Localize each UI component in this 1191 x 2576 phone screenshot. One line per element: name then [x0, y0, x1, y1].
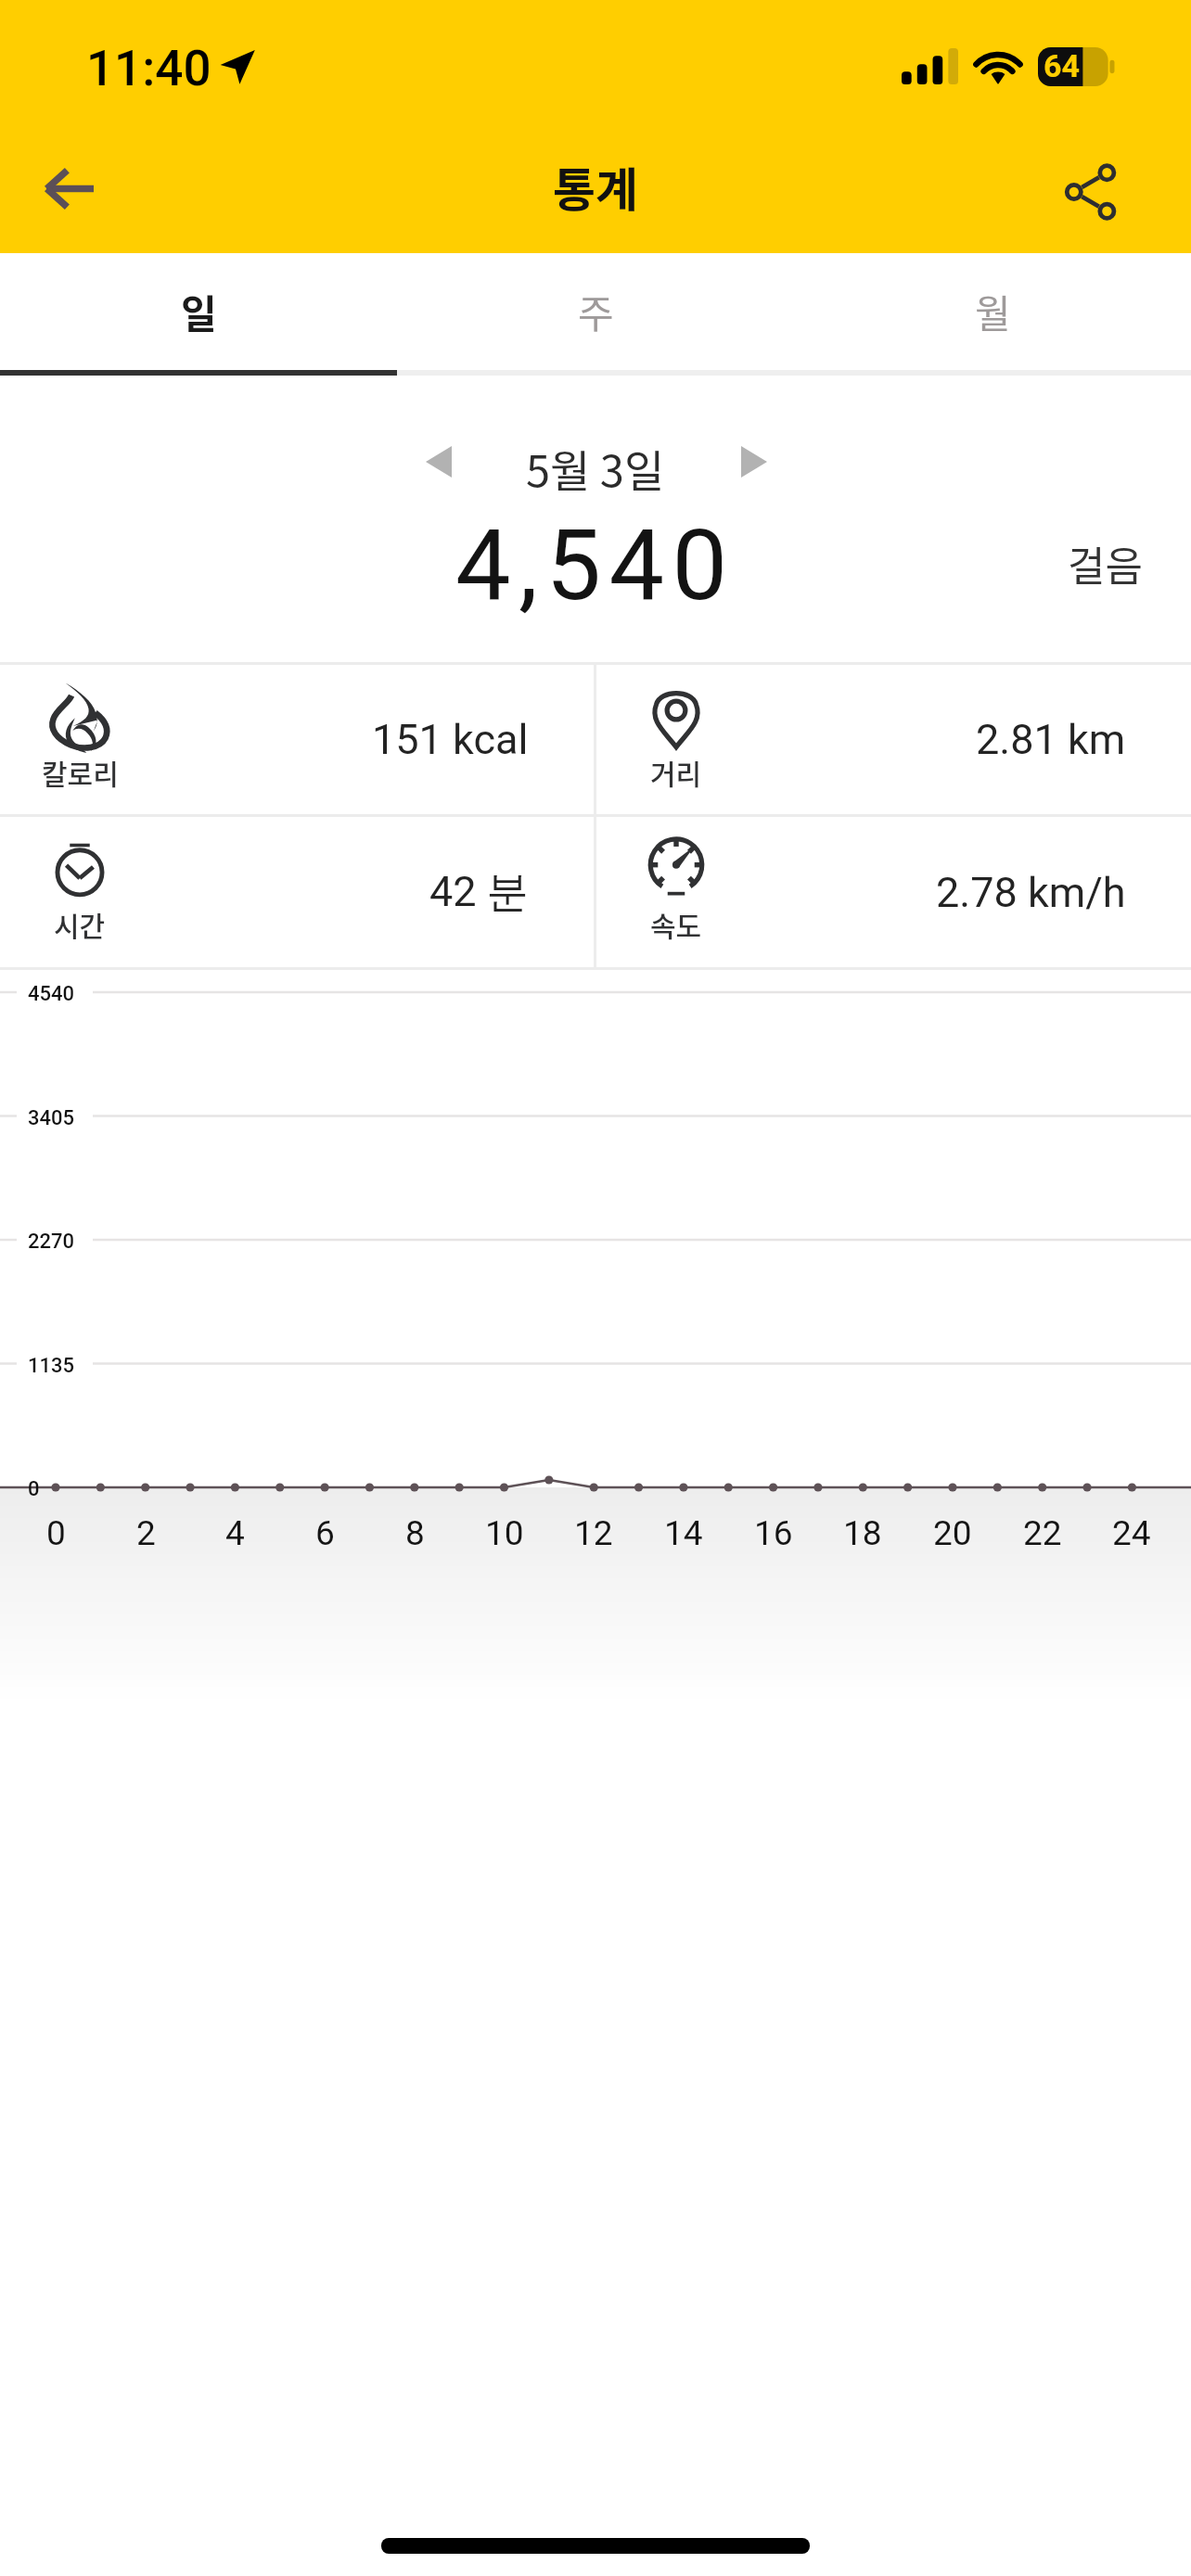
- staticText: 10: [485, 1513, 524, 1553]
- button[interactable]: Share: [1044, 146, 1137, 238]
- staticText: 14: [664, 1513, 703, 1553]
- staticText: 64: [1044, 47, 1081, 84]
- button[interactable]: 주: [397, 253, 794, 376]
- staticText: 거리: [650, 752, 702, 792]
- staticText: 3405: [28, 1106, 75, 1130]
- button[interactable]: 시간: [0, 817, 594, 967]
- button[interactable]: Next day: [722, 429, 787, 494]
- staticText: 일: [181, 283, 217, 339]
- staticText: 24: [1112, 1513, 1151, 1553]
- staticText: 칼로리: [42, 752, 119, 792]
- staticText: 151 kcal: [372, 715, 529, 764]
- staticText: 속도: [650, 904, 702, 944]
- staticText: 2.81 km: [976, 715, 1126, 764]
- staticText: 6: [315, 1513, 335, 1553]
- staticText: 주: [578, 283, 614, 339]
- staticText: 20: [933, 1513, 972, 1553]
- button[interactable]: Back: [22, 142, 115, 235]
- staticText: 1135: [28, 1354, 75, 1378]
- staticText: 월: [975, 283, 1011, 339]
- staticText: 0: [46, 1513, 66, 1553]
- staticText: 2: [136, 1513, 156, 1553]
- staticText: 4540: [28, 982, 75, 1006]
- staticText: 8: [405, 1513, 425, 1553]
- button[interactable]: 거리: [596, 665, 1191, 814]
- staticText: 시간: [54, 904, 106, 944]
- staticText: 12: [574, 1513, 613, 1553]
- button[interactable]: 일: [0, 253, 397, 376]
- staticText: 16: [754, 1513, 793, 1553]
- staticText: 5월 3일: [526, 436, 665, 499]
- button[interactable]: 속도: [596, 817, 1191, 967]
- staticText: 2270: [28, 1230, 75, 1254]
- button[interactable]: 칼로리: [0, 665, 594, 814]
- staticText: 22: [1023, 1513, 1062, 1553]
- staticText: 걸음: [1068, 534, 1143, 593]
- staticText: 4,540: [455, 508, 736, 623]
- button[interactable]: Previous day: [406, 429, 471, 494]
- staticText: 0: [28, 1477, 40, 1501]
- staticText: 통계: [553, 153, 638, 220]
- button[interactable]: 월: [794, 253, 1191, 376]
- staticText: 18: [843, 1513, 882, 1553]
- staticText: 11:40: [86, 40, 211, 97]
- staticText: 4: [225, 1513, 245, 1553]
- staticText: 2.78 km/h: [936, 868, 1126, 917]
- staticText: 42 분: [429, 866, 529, 919]
